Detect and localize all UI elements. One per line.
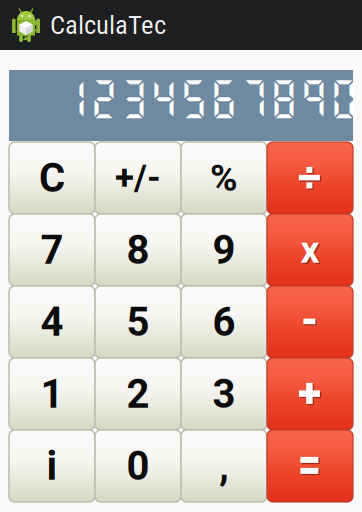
button[interactable]	[267, 142, 353, 214]
button[interactable]: 9	[181, 214, 267, 286]
button[interactable]: +/-	[95, 142, 181, 214]
button[interactable]: %	[181, 142, 267, 214]
staticText: 6	[212, 299, 235, 345]
staticText: i	[46, 443, 57, 489]
staticText: %	[210, 156, 238, 200]
button[interactable]: 3	[181, 358, 267, 430]
button[interactable]	[267, 358, 353, 430]
staticText: +/-	[115, 158, 161, 198]
staticText: x	[302, 229, 321, 273]
button[interactable]: C	[9, 142, 95, 214]
button[interactable]: 8	[95, 214, 181, 286]
button[interactable]	[267, 430, 353, 502]
button[interactable]: 0	[95, 430, 181, 502]
staticText: 8	[126, 227, 149, 273]
button[interactable]: ,	[181, 430, 267, 502]
button[interactable]: 1	[9, 358, 95, 430]
button[interactable]: x	[267, 214, 353, 286]
button[interactable]: 6	[181, 286, 267, 358]
staticText: 7	[40, 227, 63, 273]
button[interactable]: 2	[95, 358, 181, 430]
staticText: 0	[126, 443, 149, 489]
button[interactable]: 7	[9, 214, 95, 286]
staticText: 5	[126, 299, 149, 345]
staticText: 4	[40, 299, 63, 345]
staticText: ,	[219, 443, 229, 489]
staticText: 1	[40, 371, 63, 417]
staticText: C	[39, 155, 65, 201]
staticText: 9	[212, 227, 235, 273]
staticText: 3	[212, 371, 235, 417]
button[interactable]: 4	[9, 286, 95, 358]
button[interactable]: 5	[95, 286, 181, 358]
button[interactable]: i	[9, 430, 95, 502]
button[interactable]	[267, 286, 353, 358]
staticText: CalculaTec	[50, 9, 166, 41]
staticText: x	[300, 228, 319, 272]
staticText: 2	[126, 371, 149, 417]
staticText: 1234567890	[59, 74, 359, 122]
